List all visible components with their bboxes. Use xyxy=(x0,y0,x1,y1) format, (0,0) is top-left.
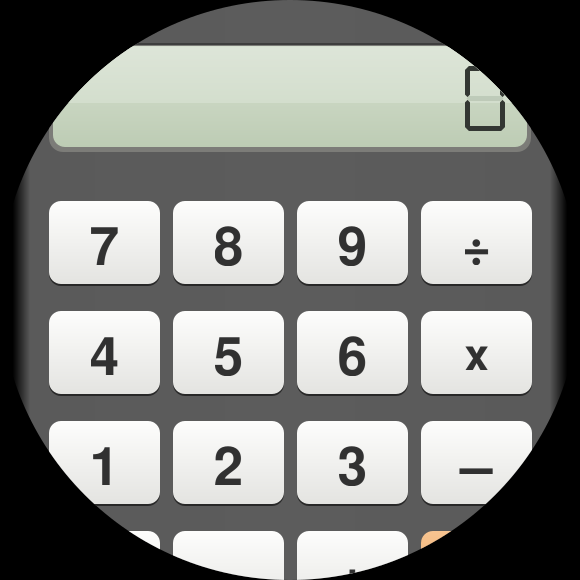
staticText: ÷ xyxy=(461,207,491,280)
button[interactable]: 8 xyxy=(173,201,284,284)
staticText: 6 xyxy=(337,315,367,392)
button[interactable]: 4 xyxy=(49,311,160,394)
staticText: 8 xyxy=(213,205,243,282)
button[interactable]: x xyxy=(421,311,532,394)
staticText: + xyxy=(336,533,369,580)
staticText: 7 xyxy=(89,205,119,282)
button[interactable]: 9 xyxy=(297,201,408,284)
button[interactable]: 3 xyxy=(297,421,408,504)
button[interactable]: 6 xyxy=(297,311,408,394)
button[interactable]: – xyxy=(421,421,532,504)
button[interactable]: 7 xyxy=(49,201,160,284)
staticText: 2 xyxy=(213,425,243,502)
staticText: – xyxy=(460,420,493,504)
button[interactable]: 2 xyxy=(173,421,284,504)
button[interactable]: ÷ xyxy=(421,201,532,284)
staticText: . xyxy=(221,535,236,580)
button[interactable]: 5 xyxy=(173,311,284,394)
staticText: 4 xyxy=(89,315,119,392)
staticText: 9 xyxy=(337,205,367,282)
button[interactable]: = xyxy=(421,531,532,580)
button[interactable]: 0 xyxy=(49,531,160,580)
staticText: 1 xyxy=(89,425,119,502)
button[interactable]: . xyxy=(173,531,284,580)
button[interactable]: + xyxy=(297,531,408,580)
staticText: x xyxy=(464,321,488,384)
button[interactable]: 1 xyxy=(49,421,160,504)
staticText: 5 xyxy=(213,315,243,392)
staticText: 3 xyxy=(337,425,367,502)
